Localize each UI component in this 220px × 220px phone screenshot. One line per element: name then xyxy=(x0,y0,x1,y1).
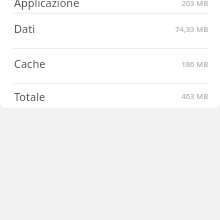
staticText: Totale xyxy=(14,89,46,104)
staticText: Applicazione xyxy=(14,0,80,10)
button[interactable]: Dati xyxy=(0,14,220,43)
button[interactable]: Cache xyxy=(0,49,220,78)
staticText: 463 MB xyxy=(181,91,208,101)
staticText: Dati xyxy=(14,21,36,36)
button[interactable]: Totale xyxy=(0,84,220,108)
staticText: 74,33 MB xyxy=(175,24,208,34)
button[interactable]: Applicazione xyxy=(0,0,220,13)
staticText: 186 MB xyxy=(181,59,208,69)
staticText: Cache xyxy=(14,56,46,71)
staticText: 203 MB xyxy=(181,0,208,8)
